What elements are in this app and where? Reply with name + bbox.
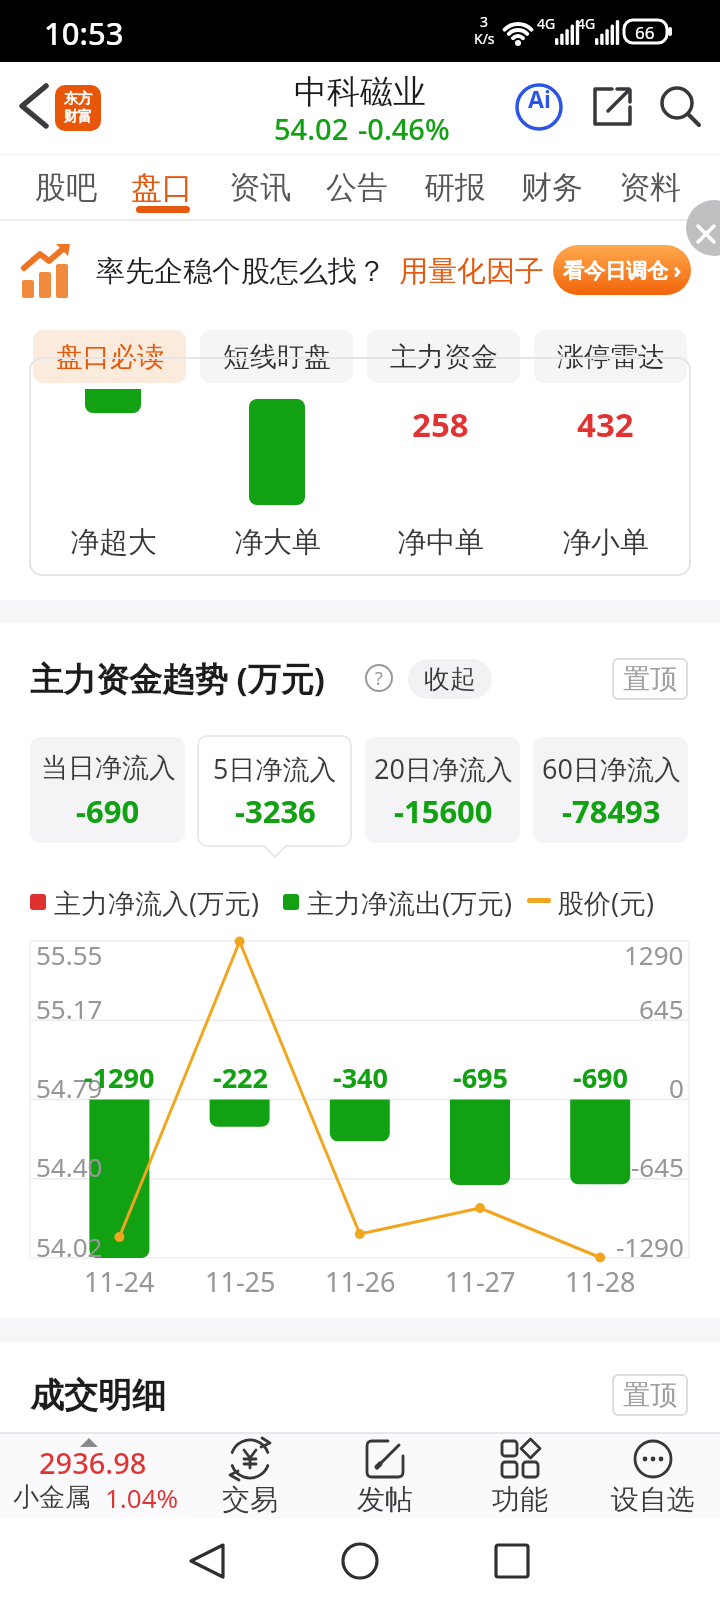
button[interactable]: 发帖 [320, 1436, 450, 1516]
staticText: -645 [631, 1149, 684, 1184]
button[interactable] [612, 658, 688, 700]
staticText: 11-24 [84, 1263, 155, 1300]
staticText: 资料 [619, 168, 681, 207]
button[interactable]: 盘口 [117, 158, 207, 216]
staticText: 用量化因子 [399, 253, 544, 290]
staticText: 率先企稳个股怎么找？ [96, 253, 386, 290]
button[interactable] [656, 82, 706, 132]
staticText: 中科磁业 [294, 71, 426, 113]
button[interactable]: 设自选 [588, 1436, 718, 1516]
button[interactable] [180, 1535, 235, 1587]
staticText: 净小单 [562, 524, 649, 561]
button[interactable] [30, 737, 185, 843]
staticText: 3 [480, 12, 489, 31]
staticText: -690 [573, 1059, 628, 1096]
staticText: -695 [453, 1059, 508, 1096]
staticText: 财务 [521, 168, 583, 207]
staticText: 54.02 [274, 109, 349, 148]
staticText: 置顶 [623, 1378, 677, 1412]
button[interactable] [8, 80, 60, 132]
staticText: 公告 [326, 168, 388, 207]
staticText: 11-27 [445, 1263, 516, 1300]
button[interactable] [533, 737, 688, 843]
staticText: -0.46% [358, 109, 450, 148]
staticText: 11-25 [205, 1263, 276, 1300]
staticText: 10:53 [44, 12, 124, 54]
staticText: 11-26 [325, 1263, 396, 1300]
staticText: 股吧 [35, 168, 97, 207]
button[interactable] [612, 1374, 688, 1416]
staticText: K/s [474, 29, 495, 48]
button[interactable]: 短线盯盘 [200, 330, 353, 383]
staticText: 盘口 [131, 168, 193, 207]
button[interactable]: 2936.98 [8, 1436, 188, 1516]
staticText: -222 [213, 1059, 268, 1096]
staticText: 5日净流入 [213, 750, 337, 787]
staticText: 54.79 [36, 1070, 103, 1105]
button[interactable] [588, 84, 634, 130]
staticText: 发帖 [357, 1482, 413, 1517]
staticText: ? [375, 666, 383, 691]
staticText: 4G [577, 14, 596, 33]
button[interactable]: 公告 [312, 158, 402, 216]
staticText: 资讯 [229, 168, 291, 207]
staticText: 短线盯盘 [223, 340, 331, 374]
staticText: 盘口必读 [56, 340, 164, 374]
button[interactable]: 研报 [410, 158, 500, 216]
staticText: 设自选 [611, 1482, 695, 1517]
staticText: -15600 [394, 790, 493, 832]
staticText: 主力净流入(万元) [54, 884, 260, 921]
button[interactable] [486, 1535, 538, 1587]
button[interactable]: 功能 [455, 1436, 585, 1516]
staticText: -3236 [235, 790, 316, 832]
staticText: 财富 [64, 108, 92, 126]
staticText: 涨停雷达 [557, 340, 665, 374]
button[interactable]: 主力资金 [367, 330, 520, 383]
staticText: 小金属 [13, 1481, 91, 1514]
button[interactable]: 盘口必读 [33, 330, 186, 383]
staticText: 60日净流入 [542, 750, 681, 787]
staticText: 0 [669, 1070, 684, 1105]
staticText: 54.02 [36, 1229, 103, 1264]
staticText: 258 [412, 402, 469, 447]
button[interactable] [408, 659, 492, 699]
staticText: 主力资金趋势 (万元) [30, 656, 325, 701]
button[interactable]: Ai [514, 82, 564, 132]
staticText: 645 [639, 991, 684, 1026]
staticText: 成交明细 [30, 1374, 166, 1417]
button[interactable] [334, 1535, 386, 1587]
staticText: 11-28 [565, 1263, 636, 1300]
button[interactable] [197, 735, 352, 847]
button[interactable]: 资料 [605, 158, 695, 216]
staticText: 1.04% [105, 1480, 179, 1515]
button[interactable]: 东方 [55, 85, 101, 131]
staticText: 交易 [222, 1482, 278, 1517]
staticText: -1290 [616, 1229, 684, 1264]
button[interactable]: 交易 [185, 1436, 315, 1516]
staticText: -78493 [562, 790, 661, 832]
button[interactable]: 看今日调仓 › [553, 245, 691, 295]
staticText: 股价(元) [557, 884, 655, 921]
staticText: 功能 [492, 1482, 548, 1517]
button[interactable]: 资讯 [215, 158, 305, 216]
staticText: 主力资金 [390, 340, 498, 374]
staticText: Ai [528, 83, 551, 114]
staticText: 55.17 [36, 991, 103, 1026]
button[interactable] [365, 737, 520, 843]
staticText: -340 [333, 1059, 388, 1096]
button[interactable]: 股吧 [21, 158, 111, 216]
staticText: 2936.98 [39, 1443, 147, 1482]
staticText: 主力净流出(万元) [307, 884, 513, 921]
staticText: 54.40 [36, 1149, 103, 1184]
staticText: 432 [577, 402, 634, 447]
button[interactable] [0, 222, 720, 322]
staticText: 研报 [424, 168, 486, 207]
staticText: 净中单 [397, 524, 484, 561]
staticText: 看今日调仓 › [563, 256, 682, 285]
staticText: 净大单 [234, 524, 321, 561]
button[interactable]: 财务 [507, 158, 597, 216]
button[interactable]: 涨停雷达 [534, 330, 687, 383]
button[interactable] [686, 222, 720, 258]
staticText: -1290 [84, 1059, 155, 1096]
staticText: 置顶 [623, 662, 677, 696]
